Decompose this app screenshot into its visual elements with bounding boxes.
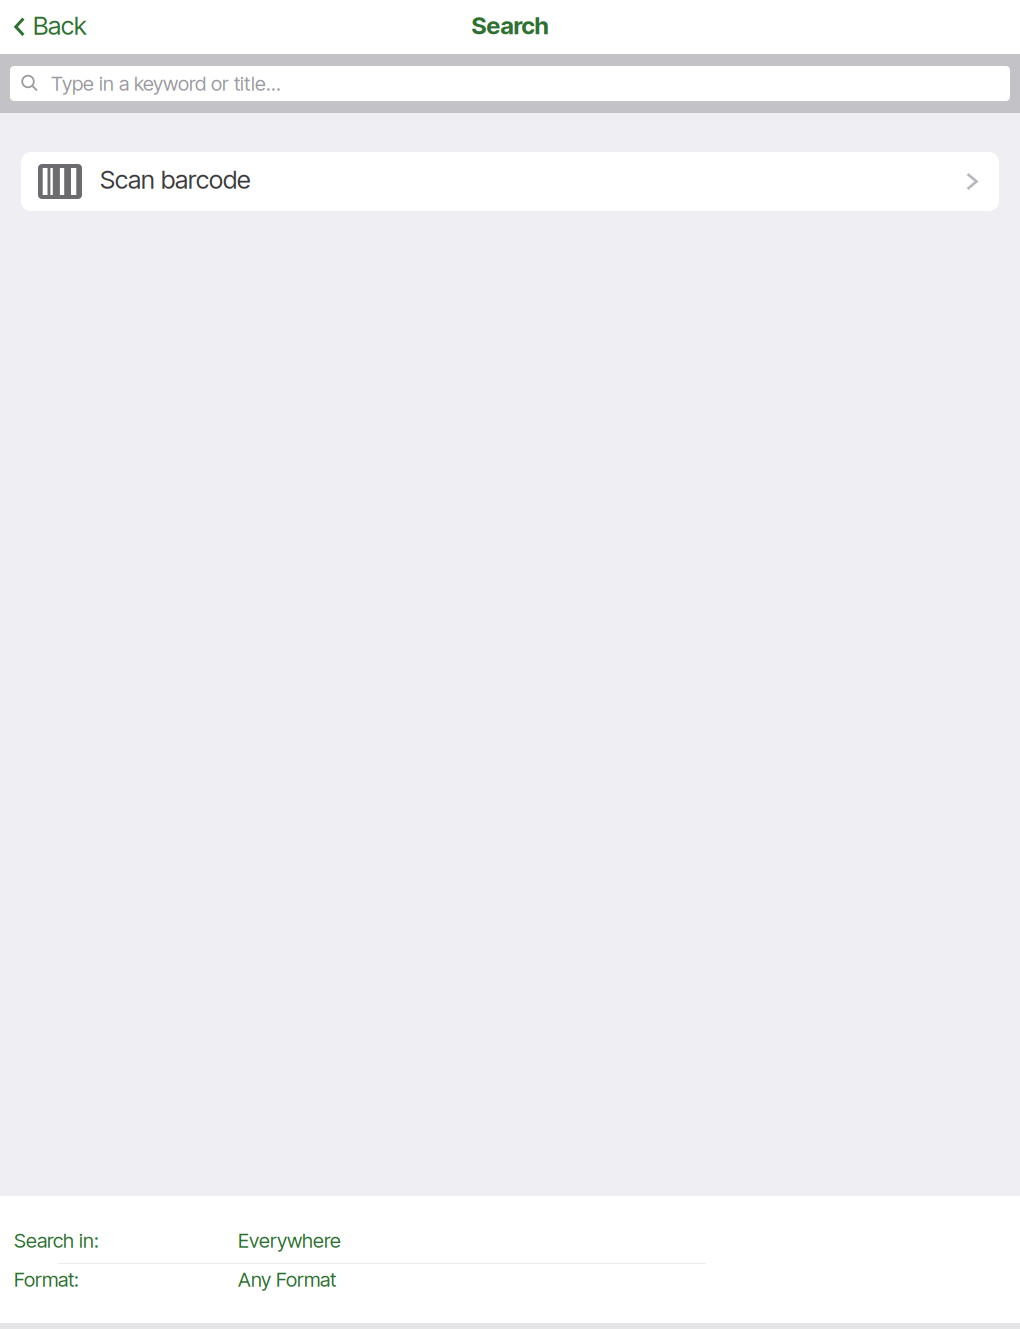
staticText: Search in: — [14, 1228, 99, 1253]
staticText: Format: — [14, 1267, 79, 1292]
staticText: Search — [471, 11, 548, 40]
button[interactable]: Back — [0, 0, 97, 54]
button[interactable]: Search in: — [0, 1231, 1020, 1264]
staticText: Type in a keyword or title... — [51, 71, 281, 96]
button[interactable]: Type in a keyword or title... — [0, 66, 1020, 101]
staticText: Everywhere — [238, 1228, 341, 1253]
staticText: Scan barcode — [100, 164, 251, 195]
staticText: Any Format — [238, 1267, 336, 1292]
button[interactable]: Scan barcode — [0, 152, 1020, 211]
button[interactable]: Format: — [0, 1270, 1020, 1289]
staticText: Back — [33, 10, 87, 41]
